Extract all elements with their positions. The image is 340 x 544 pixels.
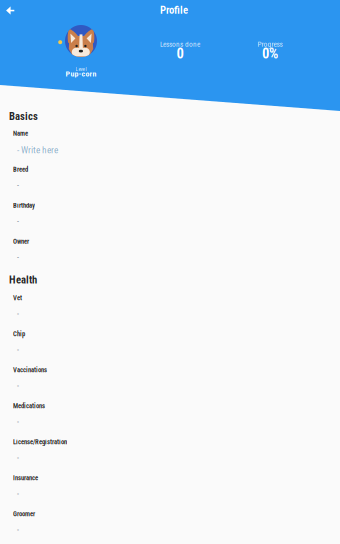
staticText: Pup-corn [65, 69, 96, 78]
button[interactable]: Breed [9, 165, 331, 201]
button[interactable]: Owner [9, 237, 331, 273]
button[interactable]: Insurance [9, 474, 331, 510]
staticText: - Write here [17, 144, 58, 155]
staticText: Birthday [13, 201, 35, 209]
staticText: - [17, 417, 19, 426]
button[interactable]: Back [0, 0, 23, 20]
button[interactable]: Birthday [9, 201, 331, 237]
staticText: Progress [257, 40, 282, 49]
button[interactable]: License/Registration [9, 438, 331, 474]
staticText: Basics [9, 110, 38, 122]
staticText: Chip [13, 330, 25, 338]
staticText: - [17, 525, 19, 534]
staticText: Vet [13, 294, 22, 302]
staticText: - [17, 309, 19, 318]
staticText: License/Registration [13, 438, 67, 446]
staticText: Level [75, 66, 86, 72]
button[interactable]: Name [9, 129, 331, 165]
staticText: - [17, 489, 19, 498]
button[interactable]: Vet [9, 294, 331, 330]
staticText: Health [9, 273, 37, 286]
staticText: Owner [13, 237, 29, 245]
button[interactable]: Groomer [9, 510, 331, 544]
staticText: - [17, 345, 19, 354]
button[interactable]: Vaccinations [9, 366, 331, 402]
staticText: Insurance [13, 474, 38, 482]
staticText: - [17, 381, 19, 390]
staticText: - [17, 252, 19, 262]
staticText: Profile [160, 4, 188, 16]
staticText: - [17, 216, 19, 226]
staticText: 0% [262, 45, 278, 62]
staticText: Vaccinations [13, 366, 47, 374]
staticText: - [17, 453, 19, 462]
button[interactable]: Chip [9, 330, 331, 366]
staticText: Breed [13, 165, 28, 173]
staticText: - [17, 180, 19, 190]
staticText: 0 [176, 45, 183, 62]
staticText: Name [13, 129, 28, 137]
staticText: Lessons done [160, 40, 200, 49]
staticText: Medications [13, 402, 45, 410]
button[interactable]: Medications [9, 402, 331, 438]
staticText: Groomer [13, 510, 35, 518]
